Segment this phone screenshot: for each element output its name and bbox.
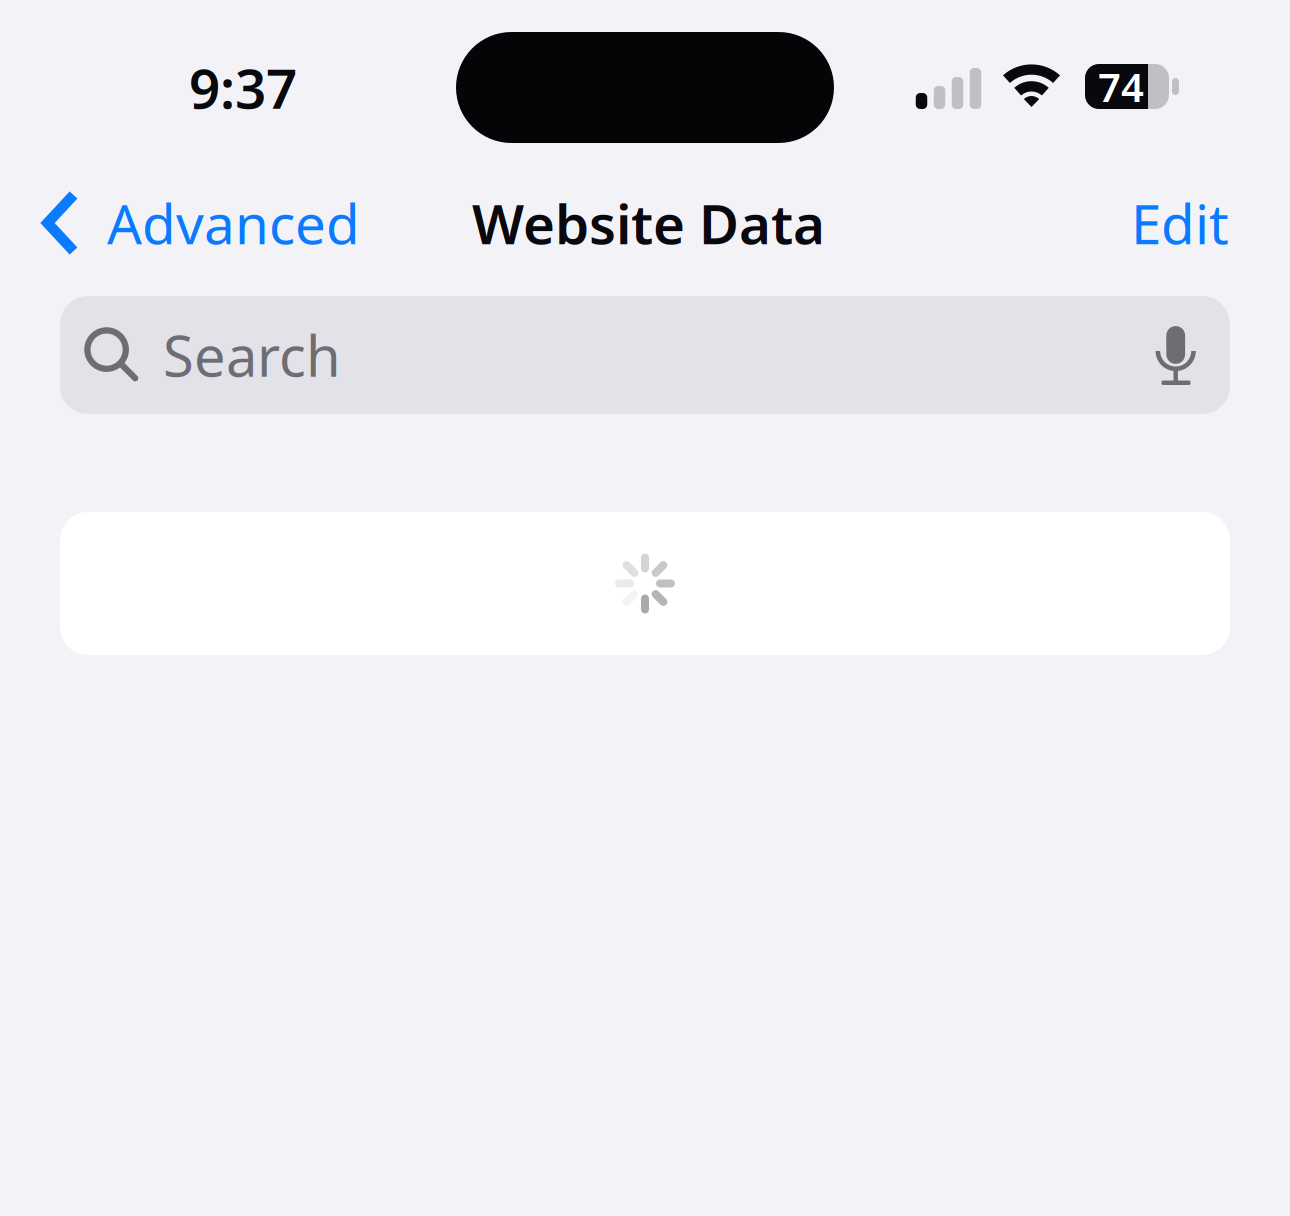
staticText: 74 bbox=[1098, 60, 1144, 113]
button[interactable]: Search bbox=[60, 296, 1230, 414]
staticText: Search bbox=[163, 318, 341, 392]
staticText: Edit bbox=[1131, 187, 1229, 259]
staticText: 9:37 bbox=[189, 51, 297, 124]
staticText: Advanced bbox=[107, 187, 360, 259]
staticText: Website Data bbox=[472, 187, 825, 259]
button[interactable]: Advanced bbox=[0, 181, 360, 265]
button[interactable]: Dictate bbox=[1137, 296, 1230, 414]
button[interactable]: Edit bbox=[1131, 181, 1290, 265]
